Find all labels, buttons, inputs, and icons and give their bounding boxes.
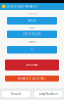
staticText: 1 [31, 48, 33, 51]
button[interactable]: Results [1, 90, 30, 97]
button[interactable]: Select [7, 17, 57, 24]
staticText: 2019-02-05 [23, 32, 41, 36]
staticText: Generate [25, 63, 38, 67]
button[interactable]: Generate [5, 59, 59, 70]
staticText: Lottery Ticket Numbers [7, 5, 37, 8]
button[interactable]: Advanced Generator [5, 75, 59, 81]
staticText: Lottery [27, 12, 36, 15]
staticText: Lucky Numbers [38, 92, 57, 96]
staticText: Advanced Generator [18, 77, 46, 80]
button[interactable]: 1 [7, 46, 57, 53]
button[interactable]: Lucky Numbers [33, 90, 62, 97]
staticText: Date [29, 26, 35, 29]
staticText: Results [11, 92, 21, 96]
staticText: Games [28, 40, 36, 44]
button[interactable]: 2019-02-05 [7, 30, 57, 38]
staticText: Select [28, 19, 36, 22]
